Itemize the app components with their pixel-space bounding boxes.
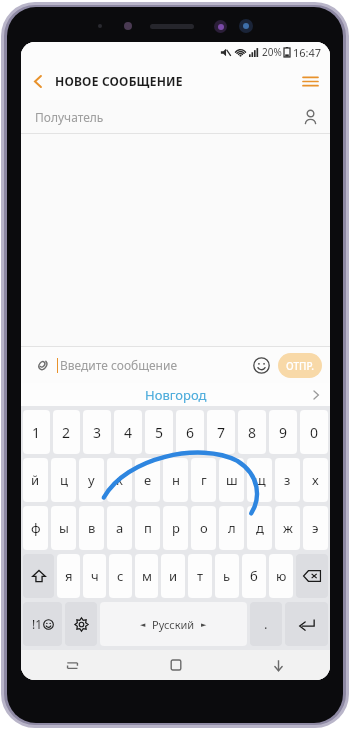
staticText: д <box>256 519 264 537</box>
staticText: ► <box>201 621 207 629</box>
staticText: л <box>228 519 236 537</box>
staticText: п <box>144 519 152 537</box>
staticText: а <box>116 519 124 537</box>
button[interactable]: Получатель <box>21 100 330 133</box>
button[interactable]: ы <box>51 506 76 550</box>
button[interactable]: п <box>135 506 160 550</box>
staticText: 5 <box>155 423 164 442</box>
staticText: о <box>200 519 208 537</box>
button[interactable]: . <box>250 602 282 646</box>
button[interactable]: щ <box>247 458 272 502</box>
staticText: в <box>88 519 96 537</box>
button[interactable]: Вложение <box>31 354 53 376</box>
staticText: э <box>312 519 319 537</box>
button[interactable]: а <box>107 506 132 550</box>
button[interactable]: я <box>57 554 80 598</box>
button[interactable]: т <box>188 554 212 598</box>
button[interactable]: Скрыть клавиатуру <box>227 650 330 680</box>
button[interactable]: Shift <box>23 554 54 598</box>
staticText: у <box>88 471 95 489</box>
button[interactable]: Новгород <box>21 383 330 406</box>
staticText: к <box>116 471 123 489</box>
button[interactable]: ч <box>83 554 106 598</box>
button[interactable]: 6 <box>176 410 204 454</box>
button[interactable]: й <box>23 458 48 502</box>
staticText: . <box>264 615 268 633</box>
button[interactable]: р <box>163 506 188 550</box>
staticText: т <box>197 567 204 585</box>
button[interactable]: Главный экран <box>124 650 227 680</box>
staticText: НОВОЕ СООБЩЕНИЕ <box>55 73 183 89</box>
button[interactable]: г <box>191 458 216 502</box>
button[interactable]: 4 <box>114 410 142 454</box>
staticText: 8 <box>248 423 257 442</box>
button[interactable]: 9 <box>269 410 297 454</box>
button[interactable]: ц <box>51 458 76 502</box>
button[interactable]: е <box>135 458 160 502</box>
staticText: 1 <box>32 423 41 442</box>
staticText: ю <box>276 567 287 585</box>
button[interactable]: и <box>161 554 185 598</box>
staticText: 20% <box>262 45 282 59</box>
button[interactable]: 7 <box>207 410 235 454</box>
staticText: !1 <box>32 616 43 632</box>
staticText: Введите сообщение <box>60 357 178 373</box>
staticText: г <box>201 471 207 489</box>
staticText: ш <box>226 471 238 489</box>
staticText: Новгород <box>145 386 207 404</box>
staticText: 6 <box>186 423 195 442</box>
button[interactable]: ж <box>275 506 300 550</box>
staticText: ОТПР. <box>286 359 315 373</box>
staticText: 7 <box>217 423 226 442</box>
button[interactable]: ш <box>219 458 244 502</box>
button[interactable]: 5 <box>145 410 173 454</box>
button[interactable]: б <box>242 554 266 598</box>
staticText: з <box>284 471 291 489</box>
staticText: Русский <box>152 617 195 632</box>
staticText: х <box>312 471 319 489</box>
button[interactable]: 1 <box>23 410 50 454</box>
button[interactable]: ю <box>269 554 293 598</box>
staticText: й <box>31 471 40 489</box>
button[interactable]: з <box>275 458 300 502</box>
button[interactable]: у <box>79 458 104 502</box>
button[interactable]: в <box>79 506 104 550</box>
button[interactable]: с <box>109 554 132 598</box>
button[interactable]: 2 <box>53 410 80 454</box>
button[interactable]: Символы и эмодзи <box>23 602 62 646</box>
button[interactable]: о <box>191 506 216 550</box>
button[interactable]: Эмодзи <box>248 352 274 378</box>
button[interactable]: ь <box>215 554 239 598</box>
staticText: б <box>250 567 258 585</box>
staticText: щ <box>254 471 266 489</box>
staticText: ы <box>59 519 69 537</box>
button[interactable]: м <box>135 554 158 598</box>
button[interactable]: д <box>247 506 272 550</box>
button[interactable]: Меню <box>290 62 330 100</box>
staticText: ф <box>31 519 41 537</box>
staticText: 16:47 <box>293 45 322 60</box>
button[interactable]: 3 <box>83 410 111 454</box>
staticText: ц <box>60 471 68 489</box>
button[interactable]: х <box>303 458 328 502</box>
button[interactable]: к <box>107 458 132 502</box>
staticText: 4 <box>124 423 133 442</box>
staticText: н <box>172 471 180 489</box>
button[interactable]: ф <box>23 506 48 550</box>
button[interactable]: 8 <box>238 410 266 454</box>
button[interactable]: Назад <box>21 64 55 98</box>
button[interactable]: Настройки <box>65 602 97 646</box>
button[interactable]: Backspace <box>296 554 328 598</box>
button[interactable]: 0 <box>300 410 328 454</box>
staticText: м <box>142 567 152 585</box>
button[interactable]: н <box>163 458 188 502</box>
staticText: р <box>172 519 180 537</box>
staticText: с <box>117 567 124 585</box>
staticText: ж <box>283 519 293 537</box>
button[interactable]: ОТПР. <box>278 353 322 378</box>
button[interactable]: л <box>219 506 244 550</box>
button[interactable]: э <box>303 506 328 550</box>
button[interactable]: ◄ <box>100 602 247 646</box>
button[interactable]: Недавние <box>21 650 124 680</box>
button[interactable]: Ввод <box>285 602 328 646</box>
